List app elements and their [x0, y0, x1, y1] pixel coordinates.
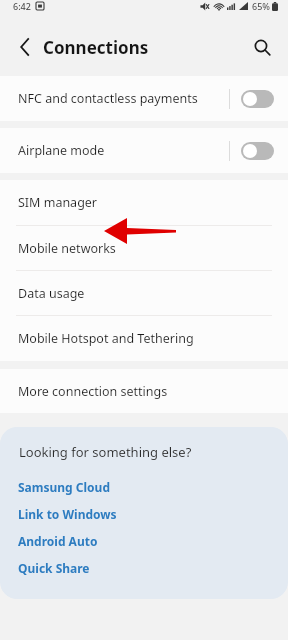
- button[interactable]: More connection settings: [0, 369, 288, 413]
- staticText: NFC and contactless payments: [18, 90, 229, 107]
- staticText: Looking for something else?: [19, 443, 192, 461]
- staticText: Link to Windows: [18, 506, 117, 522]
- button[interactable]: Link to Windows: [0, 500, 288, 527]
- button[interactable]: Search: [245, 30, 279, 64]
- button[interactable]: Android Auto: [0, 527, 288, 554]
- button[interactable]: SIM manager: [0, 180, 288, 225]
- staticText: Connections: [43, 36, 149, 59]
- button[interactable]: Mobile networks: [0, 226, 288, 270]
- staticText: Airplane mode: [18, 142, 229, 159]
- staticText: 6:42: [13, 0, 31, 12]
- button[interactable]: NFC and contactless payments: [0, 76, 288, 121]
- staticText: Mobile Hotspot and Tethering: [18, 330, 194, 347]
- button[interactable]: Toggle switch, off: [241, 142, 274, 160]
- staticText: 65%: [252, 0, 270, 12]
- staticText: Data usage: [18, 285, 85, 302]
- staticText: Quick Share: [18, 560, 90, 576]
- button[interactable]: Mobile Hotspot and Tethering: [0, 316, 288, 361]
- staticText: Samsung Cloud: [18, 479, 110, 495]
- button[interactable]: Samsung Cloud: [0, 473, 288, 500]
- button[interactable]: Data usage: [0, 271, 288, 315]
- button[interactable]: Airplane mode: [0, 128, 288, 173]
- button[interactable]: Toggle switch, off: [241, 90, 274, 108]
- button[interactable]: Back: [8, 30, 42, 64]
- staticText: More connection settings: [18, 383, 168, 400]
- button[interactable]: Quick Share: [0, 554, 288, 581]
- staticText: Android Auto: [18, 533, 98, 549]
- staticText: Mobile networks: [18, 240, 116, 257]
- staticText: SIM manager: [18, 194, 98, 211]
